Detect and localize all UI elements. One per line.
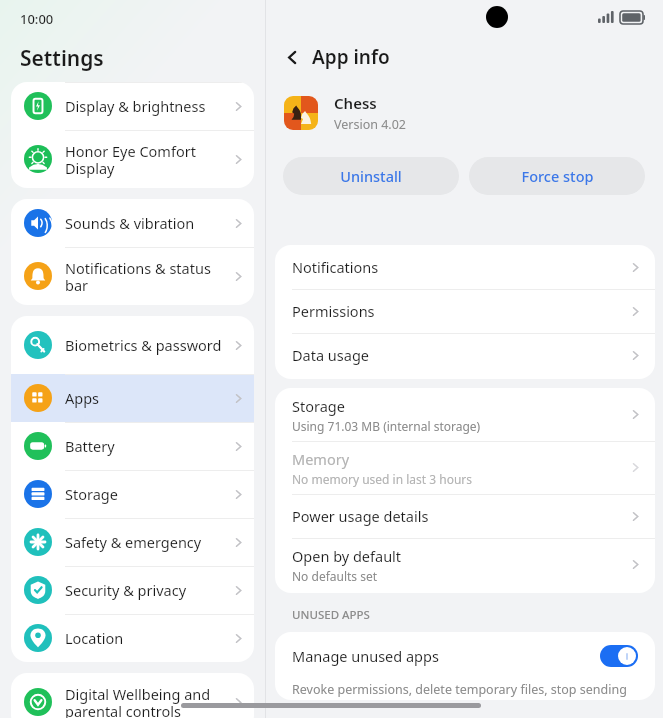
staticText: App info [312, 44, 390, 70]
staticText: Power usage details [292, 506, 429, 526]
staticText: Display & brightness [65, 96, 227, 116]
button[interactable]: Apps [11, 374, 254, 422]
button[interactable]: Back [284, 44, 390, 70]
staticText: UNUSED APPS [292, 607, 370, 623]
button[interactable]: Biometrics & password [11, 316, 254, 374]
button[interactable]: Battery [11, 422, 254, 470]
button[interactable]: Memory [275, 441, 655, 494]
button[interactable]: Safety & emergency [11, 518, 254, 566]
button[interactable]: Display & brightness [11, 82, 254, 130]
staticText: No defaults set [292, 568, 378, 584]
staticText: Security & privacy [65, 580, 227, 600]
staticText: Open by default [292, 546, 402, 566]
staticText: Data usage [292, 345, 369, 365]
staticText: Honor Eye Comfort Display [65, 141, 227, 178]
staticText: Location [65, 628, 227, 648]
staticText: Permissions [292, 301, 375, 321]
staticText: Version 4.02 [334, 116, 407, 133]
button[interactable]: Power usage details [275, 494, 655, 538]
button[interactable]: Notifications & status bar [11, 247, 254, 305]
button[interactable]: Storage [275, 388, 655, 441]
staticText: No memory used in last 3 hours [292, 471, 473, 487]
staticText: Settings [20, 44, 104, 73]
staticText: Force stop [521, 166, 594, 186]
button[interactable]: Sounds & vibration [11, 199, 254, 247]
staticText: Revoke permissions, delete temporary fil… [292, 681, 627, 698]
staticText: Digital Wellbeing and parental controls [65, 684, 227, 718]
button[interactable]: Notifications [275, 245, 655, 289]
staticText: Safety & emergency [65, 532, 227, 552]
staticText: Uninstall [340, 166, 402, 186]
button[interactable]: Manage unused apps toggle [600, 645, 638, 667]
staticText: Sounds & vibration [65, 213, 227, 233]
button[interactable]: Open by default [275, 538, 655, 591]
button[interactable]: Force stop [469, 157, 645, 195]
staticText: Using 71.03 MB (internal storage) [292, 418, 481, 434]
button[interactable]: Security & privacy [11, 566, 254, 614]
staticText: Biometrics & password [65, 335, 227, 355]
button[interactable]: Data usage [275, 333, 655, 377]
staticText: Storage [292, 396, 345, 416]
staticText: Storage [65, 484, 227, 504]
staticText: Notifications & status bar [65, 258, 227, 295]
button[interactable]: Uninstall [283, 157, 459, 195]
button[interactable]: Digital Wellbeing and parental controls [11, 673, 254, 718]
button[interactable]: Storage [11, 470, 254, 518]
staticText: Memory [292, 449, 350, 469]
staticText: Manage unused apps [292, 646, 600, 666]
staticText: Notifications [292, 257, 379, 277]
button[interactable]: Manage unused apps [275, 632, 655, 679]
button[interactable]: Honor Eye Comfort Display [11, 130, 254, 188]
staticText: Chess [334, 93, 377, 113]
staticText: Apps [65, 388, 227, 408]
button[interactable]: Location [11, 614, 254, 662]
staticText: Battery [65, 436, 227, 456]
button[interactable]: Permissions [275, 289, 655, 333]
staticText: 10:00 [20, 10, 54, 28]
